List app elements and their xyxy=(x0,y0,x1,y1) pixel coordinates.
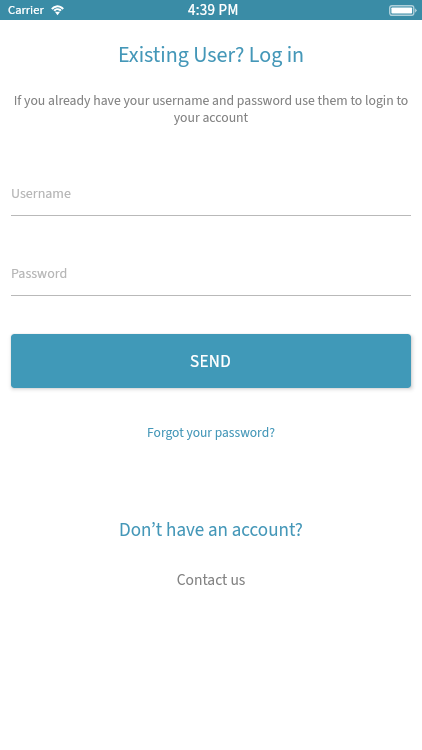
staticText: 4:39 PM xyxy=(188,0,239,20)
button[interactable]: Forgot your password? xyxy=(0,415,422,447)
button[interactable]: SEND xyxy=(11,334,411,388)
staticText: Username xyxy=(11,184,71,204)
other: Wi-Fi signal xyxy=(50,5,65,15)
staticText: Carrier xyxy=(8,1,44,19)
staticText: If you already have your username and pa… xyxy=(11,91,411,128)
button[interactable]: Username xyxy=(11,184,411,216)
staticText: Don’t have an account? xyxy=(0,517,422,544)
staticText: Password xyxy=(11,264,68,284)
button[interactable]: Contact us xyxy=(0,563,422,595)
other: Battery full xyxy=(389,5,417,16)
staticText: SEND xyxy=(190,350,232,374)
staticText: Contact us xyxy=(0,569,422,591)
staticText: Forgot your password? xyxy=(0,423,422,442)
button[interactable]: Password xyxy=(11,264,411,296)
staticText: Existing User? Log in xyxy=(0,39,422,70)
